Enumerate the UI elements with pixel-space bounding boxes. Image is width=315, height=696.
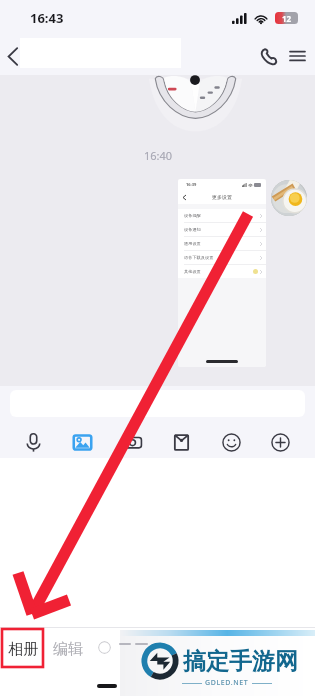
staticText: 12	[282, 13, 292, 24]
button[interactable]: Photos	[68, 428, 96, 456]
button[interactable]: More	[266, 428, 294, 456]
staticText: 编辑	[53, 640, 83, 659]
staticText: 16:40	[144, 148, 173, 163]
button[interactable]: Red packet	[167, 428, 195, 456]
staticText: 设备通知	[184, 227, 201, 232]
button[interactable]: Camera	[118, 428, 146, 456]
button[interactable]: 编辑	[49, 636, 86, 662]
button[interactable]: Voice message	[19, 428, 47, 456]
staticText: 16:39	[186, 182, 197, 187]
staticText: 通用设置	[184, 241, 201, 246]
button[interactable]: Emoji	[217, 428, 245, 456]
button[interactable]: Back	[0, 43, 26, 69]
button[interactable]: Menu	[285, 37, 309, 75]
button[interactable]	[98, 641, 111, 654]
staticText: 16:43	[30, 9, 64, 27]
staticText: 其他设置	[184, 269, 201, 274]
button[interactable]: 相册	[4, 636, 41, 662]
staticText: GDLED.NET	[205, 678, 249, 688]
staticText: 相册	[8, 640, 38, 659]
staticText: 语音下载及设置	[184, 255, 214, 260]
button[interactable]: Voice call	[255, 37, 281, 75]
staticText: 搞定手游网	[183, 647, 298, 676]
button[interactable]: 16:39	[178, 179, 266, 367]
staticText: 更多设置	[212, 194, 232, 200]
staticText: 设备提醒	[184, 213, 201, 218]
button[interactable]	[271, 180, 307, 216]
button[interactable]	[10, 390, 305, 417]
